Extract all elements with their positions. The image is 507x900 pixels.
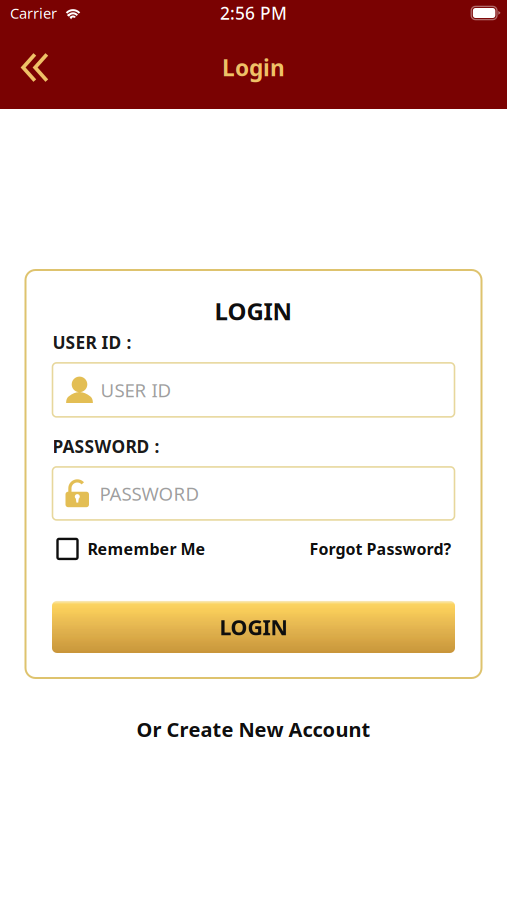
staticText: LOGIN xyxy=(214,295,292,327)
staticText: PASSWORD xyxy=(99,481,199,506)
button[interactable]: Back xyxy=(0,39,70,95)
staticText: Or Create New Account xyxy=(136,716,370,743)
button[interactable]: Remember Me xyxy=(52,538,205,559)
button[interactable]: Forgot Password? xyxy=(309,538,454,559)
staticText: Remember Me xyxy=(87,538,205,559)
staticText: USER ID : xyxy=(52,331,131,354)
staticText: Login xyxy=(222,52,285,82)
button[interactable]: USER ID xyxy=(52,363,454,417)
staticText: 2:56 PM xyxy=(220,1,287,24)
button[interactable]: Or Create New Account xyxy=(136,716,370,743)
staticText: USER ID xyxy=(100,377,171,402)
button[interactable]: PASSWORD xyxy=(52,467,454,520)
staticText: LOGIN xyxy=(219,613,287,641)
staticText: PASSWORD : xyxy=(52,435,159,458)
staticText: Forgot Password? xyxy=(309,538,451,559)
staticText: Carrier xyxy=(10,3,57,23)
button[interactable]: LOGIN xyxy=(52,601,455,653)
